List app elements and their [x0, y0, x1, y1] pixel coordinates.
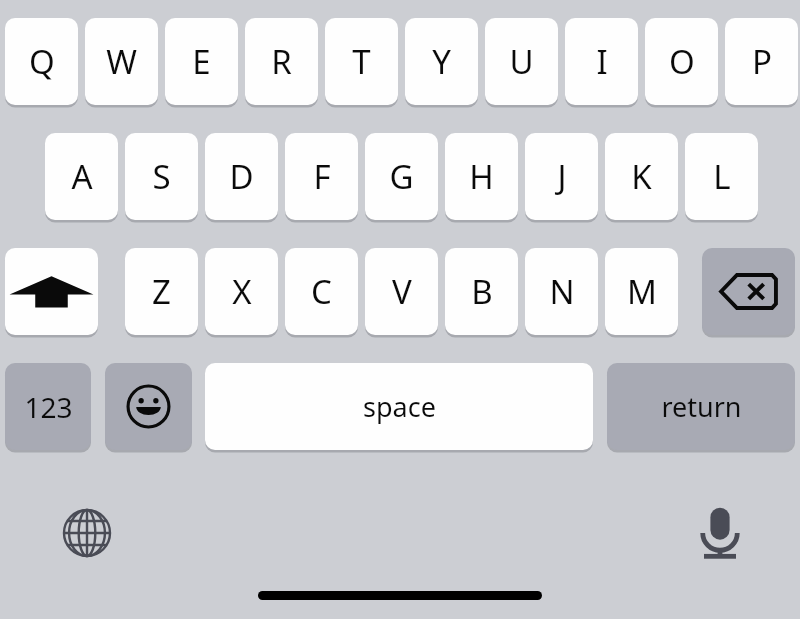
button[interactable]: 123: [5, 363, 91, 450]
staticText: space: [363, 388, 436, 425]
button[interactable]: Emoji: [105, 363, 192, 450]
staticText: J: [557, 154, 567, 199]
staticText: F: [313, 154, 331, 199]
staticText: E: [192, 39, 211, 84]
button[interactable]: Y: [405, 18, 478, 105]
button[interactable]: X: [205, 248, 278, 335]
staticText: D: [229, 154, 254, 199]
staticText: B: [471, 269, 493, 314]
button[interactable]: Switch keyboard language: [60, 506, 114, 560]
button[interactable]: M: [605, 248, 678, 335]
button[interactable]: Z: [125, 248, 198, 335]
staticText: W: [106, 39, 137, 84]
button[interactable]: P: [725, 18, 798, 105]
staticText: P: [752, 39, 772, 84]
button[interactable]: R: [245, 18, 318, 105]
staticText: M: [627, 269, 657, 314]
staticText: K: [631, 154, 652, 199]
staticText: I: [596, 39, 608, 84]
staticText: return: [661, 388, 742, 425]
staticText: O: [669, 39, 695, 84]
staticText: L: [713, 154, 731, 199]
button[interactable]: J: [525, 133, 598, 220]
button[interactable]: Delete: [702, 248, 795, 335]
staticText: A: [71, 154, 93, 199]
staticText: Y: [432, 39, 451, 84]
staticText: C: [311, 269, 332, 314]
button[interactable]: K: [605, 133, 678, 220]
button[interactable]: V: [365, 248, 438, 335]
button[interactable]: C: [285, 248, 358, 335]
staticText: X: [232, 269, 252, 314]
staticText: R: [271, 39, 292, 84]
button[interactable]: L: [685, 133, 758, 220]
button[interactable]: G: [365, 133, 438, 220]
staticText: N: [549, 269, 575, 314]
button[interactable]: space: [205, 363, 593, 450]
button[interactable]: N: [525, 248, 598, 335]
button[interactable]: Q: [5, 18, 78, 105]
button[interactable]: A: [45, 133, 118, 220]
button[interactable]: U: [485, 18, 558, 105]
staticText: S: [152, 154, 171, 199]
staticText: H: [469, 154, 494, 199]
staticText: 123: [24, 388, 73, 426]
button[interactable]: S: [125, 133, 198, 220]
button[interactable]: B: [445, 248, 518, 335]
button[interactable]: D: [205, 133, 278, 220]
button[interactable]: Dictate: [688, 500, 752, 564]
staticText: T: [352, 39, 371, 84]
button[interactable]: I: [565, 18, 638, 105]
button[interactable]: E: [165, 18, 238, 105]
staticText: Z: [152, 269, 171, 314]
button[interactable]: H: [445, 133, 518, 220]
button[interactable]: O: [645, 18, 718, 105]
staticText: G: [389, 154, 414, 199]
button[interactable]: T: [325, 18, 398, 105]
button[interactable]: W: [85, 18, 158, 105]
button[interactable]: F: [285, 133, 358, 220]
staticText: Q: [29, 39, 55, 84]
button[interactable]: Shift: [5, 248, 98, 335]
staticText: V: [392, 269, 412, 314]
button[interactable]: return: [607, 363, 795, 450]
staticText: U: [509, 39, 534, 84]
